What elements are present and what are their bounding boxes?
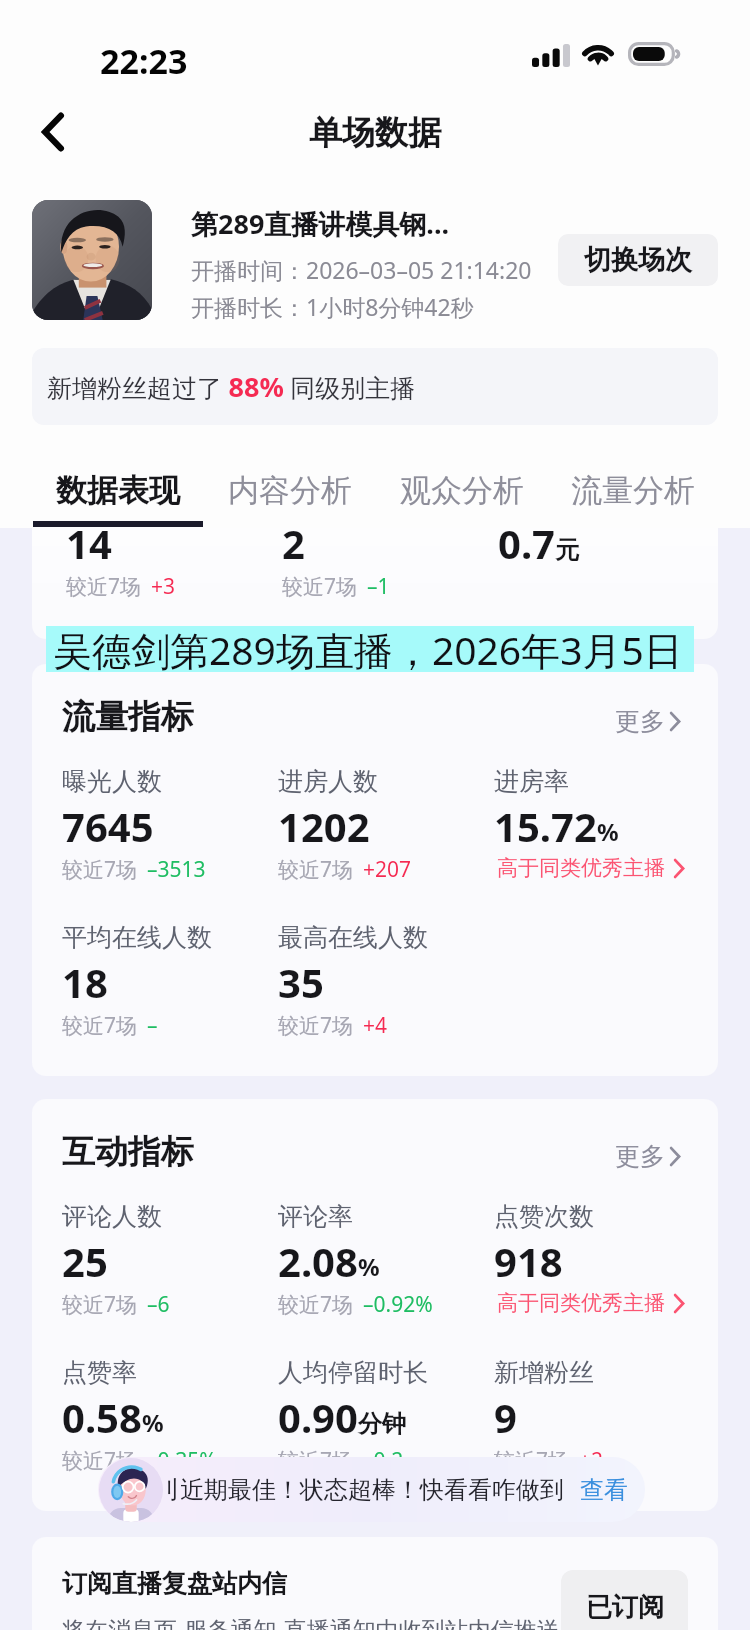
staticText: –0.92% — [363, 1290, 433, 1319]
button[interactable]: 切换场次 — [558, 234, 718, 286]
staticText: 1202 — [278, 799, 370, 853]
staticText: 数据表现 — [56, 471, 180, 510]
staticText: –3513 — [147, 855, 206, 884]
staticText: 吴德剑第289场直播，2026年3月5日 — [53, 623, 683, 676]
staticText: 点赞率 — [62, 1357, 137, 1388]
staticText: 人均停留时长 — [278, 1357, 428, 1388]
staticText: –0.35% — [147, 1446, 217, 1475]
staticText: 18 — [62, 955, 108, 1009]
staticText: 点赞次数 — [494, 1201, 594, 1232]
staticText: –6 — [147, 1290, 170, 1319]
staticText: 切换场次 — [584, 243, 692, 277]
staticText: 较近7场 — [62, 1446, 138, 1475]
staticText: – — [147, 1011, 158, 1040]
staticText: 更多 — [615, 706, 665, 737]
staticText: 较近7场 — [62, 1290, 138, 1319]
staticText: % — [597, 815, 619, 848]
button[interactable]: 高于同类优秀主播 — [497, 855, 685, 881]
staticText: 较近7场 — [494, 1446, 570, 1475]
staticText: 0.7 — [498, 528, 555, 570]
staticText: 2.08 — [278, 1234, 358, 1288]
staticText: 7645 — [62, 799, 154, 853]
staticText: 918 — [494, 1234, 563, 1288]
staticText: 较近7场 — [278, 1446, 354, 1475]
staticText: 较近7场 — [278, 1011, 354, 1040]
staticText: 0.90 — [278, 1390, 358, 1444]
staticText: 流量分析 — [571, 471, 695, 510]
staticText: 第289直播讲模具钢... — [191, 205, 450, 242]
staticText: 内容分析 — [228, 471, 352, 510]
staticText: 订阅直播复盘站内信 — [62, 1568, 287, 1599]
staticText: 评论人数 — [62, 1201, 162, 1232]
staticText: 进房人数 — [278, 766, 378, 797]
staticText: 0.58 — [62, 1390, 142, 1444]
staticText: 较近7场 — [62, 855, 138, 884]
button[interactable]: 刂近期最佳！状态超棒！快看看咋做到 — [98, 1457, 645, 1522]
button[interactable]: 观众分析 — [376, 455, 548, 528]
staticText: 新增粉丝 — [494, 1357, 594, 1388]
staticText: 观众分析 — [400, 471, 524, 510]
staticText: +3 — [151, 572, 176, 601]
staticText: 较近7场 — [62, 1011, 138, 1040]
staticText: 更多 — [615, 1141, 665, 1172]
staticText: +207 — [363, 855, 412, 884]
staticText: 高于同类优秀主播 — [497, 1290, 665, 1316]
staticText: % — [358, 1250, 380, 1283]
staticText: 较近7场 — [278, 855, 354, 884]
staticText: –1 — [367, 572, 390, 601]
button[interactable]: 高于同类优秀主播 — [497, 1290, 685, 1316]
staticText: 已订阅 — [586, 1591, 664, 1624]
button[interactable]: 新增粉丝超过了 88% 同级别主播 — [32, 348, 718, 425]
staticText: 开播时间：2026–03–05 21:14:20 — [191, 254, 532, 285]
staticText: –0.2 — [363, 1446, 404, 1475]
staticText: 流量指标 — [62, 696, 194, 738]
staticText: 曝光人数 — [62, 766, 162, 797]
button[interactable]: 内容分析 — [204, 455, 376, 528]
button[interactable]: 已订阅 — [561, 1570, 688, 1630]
staticText: 较近7场 — [278, 1290, 354, 1319]
staticText: 25 — [62, 1234, 108, 1288]
staticText: 刂近期最佳！状态超棒！快看看咋做到 — [156, 1475, 564, 1505]
staticText: 单场数据 — [309, 112, 441, 154]
staticText: 进房率 — [494, 766, 569, 797]
staticText: 评论率 — [278, 1201, 353, 1232]
staticText: +4 — [363, 1011, 388, 1040]
staticText: 分钟 — [358, 1409, 406, 1439]
staticText: 9 — [494, 1390, 517, 1444]
button[interactable]: 数据表现 — [32, 455, 204, 528]
button[interactable]: 更多 — [615, 706, 681, 737]
staticText: 元 — [555, 535, 579, 565]
button[interactable]: Back — [21, 100, 85, 164]
staticText: 2 — [282, 528, 305, 570]
staticText: 将在消息页-服务通知-直播通知中收到站内信推送 — [62, 1613, 560, 1630]
staticText: 新增粉丝超过了 88% 同级别主播 — [47, 368, 416, 405]
button[interactable]: 更多 — [615, 1141, 681, 1172]
staticText: 查看 — [580, 1475, 628, 1505]
staticText: +2 — [579, 1446, 604, 1475]
staticText: 最高在线人数 — [278, 922, 428, 953]
staticText: 较近7场 — [282, 572, 358, 601]
staticText: 22:23 — [100, 38, 188, 84]
staticText: 15.72 — [494, 799, 597, 853]
staticText: 平均在线人数 — [62, 922, 212, 953]
button[interactable]: 流量分析 — [547, 455, 719, 528]
staticText: 高于同类优秀主播 — [497, 855, 665, 881]
staticText: 开播时长：1小时8分钟42秒 — [191, 291, 474, 322]
staticText: 35 — [278, 955, 324, 1009]
staticText: 14 — [66, 528, 112, 570]
staticText: 互动指标 — [62, 1131, 194, 1173]
staticText: % — [142, 1406, 164, 1439]
staticText: 较近7场 — [66, 572, 142, 601]
